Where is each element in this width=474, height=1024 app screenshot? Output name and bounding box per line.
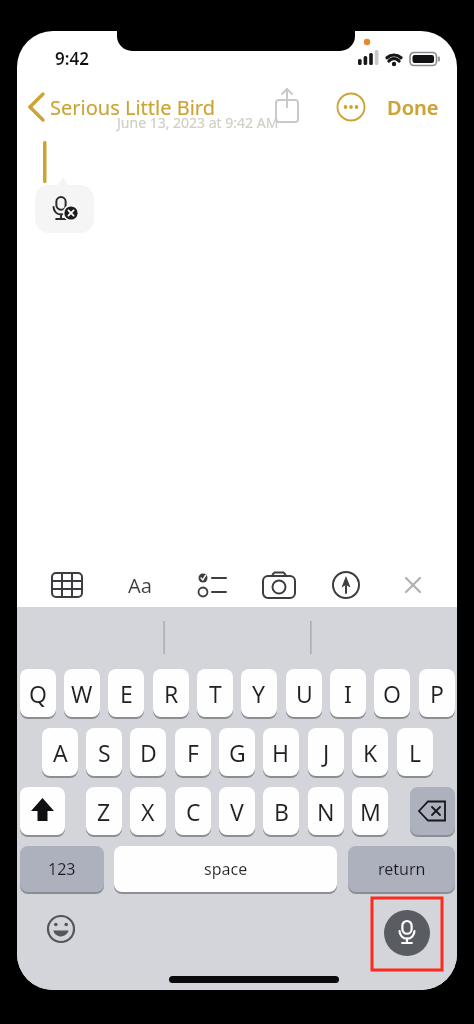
staticText: Y: [252, 678, 266, 709]
button[interactable]: Z: [86, 787, 122, 835]
button[interactable]: A: [42, 728, 78, 776]
button[interactable]: X: [130, 787, 166, 835]
staticText: R: [164, 678, 179, 709]
staticText: D: [140, 737, 157, 768]
button[interactable]: S: [86, 728, 122, 776]
staticText: I: [344, 678, 352, 709]
staticText: S: [98, 737, 111, 768]
button[interactable]: C: [175, 787, 211, 835]
button[interactable]: [333, 89, 369, 125]
staticText: J: [323, 737, 330, 768]
button[interactable]: 123: [20, 846, 104, 892]
button[interactable]: M: [352, 787, 388, 835]
staticText: T: [209, 678, 222, 709]
button[interactable]: N: [308, 787, 344, 835]
button[interactable]: U: [286, 669, 322, 717]
button[interactable]: P: [419, 669, 455, 717]
staticText: space: [204, 858, 248, 880]
staticText: return: [378, 858, 426, 880]
staticText: 123: [48, 858, 76, 880]
staticText: U: [296, 678, 313, 709]
button[interactable]: [326, 565, 366, 605]
button[interactable]: D: [130, 728, 166, 776]
button[interactable]: J: [308, 728, 344, 776]
staticText: Done: [387, 94, 439, 121]
button[interactable]: Done: [381, 89, 445, 125]
button[interactable]: R: [153, 669, 189, 717]
button[interactable]: [395, 567, 431, 603]
button[interactable]: [47, 565, 87, 605]
button[interactable]: return: [348, 846, 455, 892]
staticText: A: [53, 737, 68, 768]
staticText: P: [430, 678, 444, 709]
staticText: V: [230, 796, 244, 827]
staticText: June 13, 2023 at 9:42 AM: [117, 113, 279, 132]
button[interactable]: G: [219, 728, 255, 776]
staticText: K: [363, 737, 378, 768]
staticText: Serious Little Bird: [50, 94, 215, 121]
button[interactable]: space: [114, 846, 337, 892]
button[interactable]: [35, 185, 94, 233]
button[interactable]: [46, 914, 76, 944]
button[interactable]: Aa: [120, 565, 160, 605]
button[interactable]: [384, 910, 430, 956]
staticText: Q: [29, 678, 47, 709]
button[interactable]: L: [397, 728, 433, 776]
button[interactable]: O: [374, 669, 410, 717]
button[interactable]: I: [330, 669, 366, 717]
staticText: B: [274, 796, 289, 827]
staticText: G: [229, 737, 246, 768]
button[interactable]: [410, 787, 455, 835]
button[interactable]: V: [219, 787, 255, 835]
staticText: N: [317, 796, 335, 827]
staticText: H: [272, 737, 290, 768]
staticText: 9:42: [55, 47, 89, 70]
button[interactable]: [259, 565, 299, 605]
staticText: Z: [97, 796, 111, 827]
staticText: M: [360, 796, 381, 827]
staticText: L: [409, 737, 422, 768]
button[interactable]: [20, 787, 65, 835]
button[interactable]: H: [263, 728, 299, 776]
button[interactable]: B: [263, 787, 299, 835]
button[interactable]: T: [197, 669, 233, 717]
button[interactable]: E: [108, 669, 144, 717]
button[interactable]: K: [352, 728, 388, 776]
button[interactable]: [269, 83, 305, 125]
button[interactable]: W: [64, 669, 100, 717]
button[interactable]: Q: [20, 669, 56, 717]
staticText: E: [120, 678, 133, 709]
staticText: F: [187, 737, 199, 768]
staticText: O: [383, 678, 401, 709]
button[interactable]: F: [175, 728, 211, 776]
staticText: X: [141, 796, 155, 827]
button[interactable]: Y: [241, 669, 277, 717]
button[interactable]: Serious Little Bird: [21, 89, 215, 125]
staticText: C: [186, 796, 201, 827]
staticText: Aa: [128, 572, 152, 599]
staticText: W: [71, 678, 93, 709]
button[interactable]: [192, 565, 232, 605]
